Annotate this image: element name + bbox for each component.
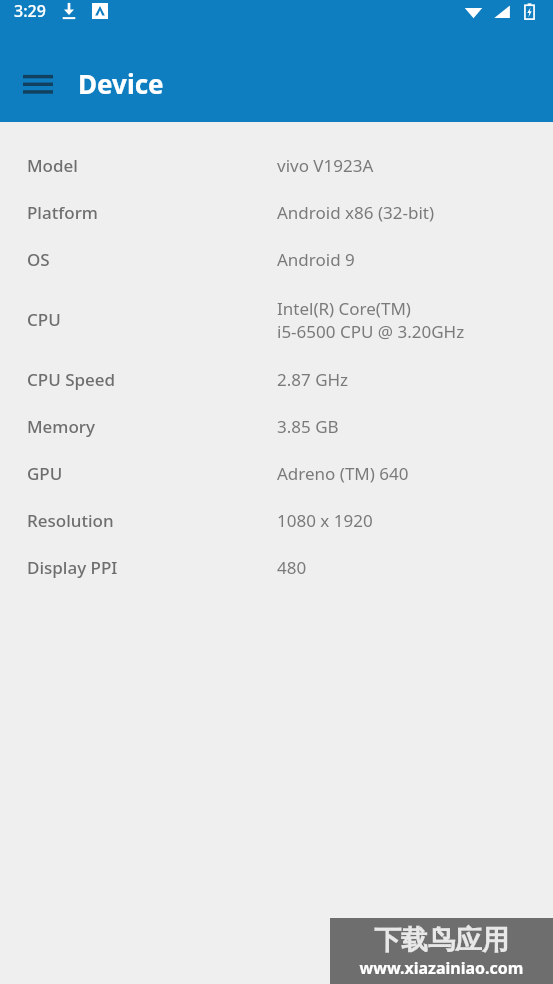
staticText: Display PPI [27,556,118,579]
staticText: 3.85 GB [277,415,339,438]
staticText: Model [27,154,78,177]
staticText: 下载鸟应用 [338,923,545,957]
staticText: Device [78,66,164,101]
staticText: i5-6500 CPU @ 3.20GHz [277,320,465,343]
staticText: 480 [277,556,307,579]
button[interactable]: Model [0,142,553,189]
staticText: GPU [27,462,63,485]
staticText: 1080 x 1920 [277,509,373,532]
staticText: 3:29 [14,0,46,22]
button[interactable]: CPU [0,283,553,356]
staticText: Android 9 [277,248,355,271]
staticText: Platform [27,201,98,224]
staticText: Intel(R) Core(TM) [277,297,411,320]
staticText: OS [27,248,50,271]
staticText: CPU Speed [27,368,116,391]
staticText: Memory [27,415,96,438]
staticText: Adreno (TM) 640 [277,462,409,485]
button[interactable]: Resolution [0,497,553,544]
button[interactable]: Open navigation menu [12,57,64,109]
button[interactable]: OS [0,236,553,283]
staticText: Android x86 (32-bit) [277,201,435,224]
staticText: CPU [27,308,61,331]
staticText: vivo V1923A [277,154,374,177]
button[interactable]: Platform [0,189,553,236]
button[interactable]: Memory [0,403,553,450]
button[interactable]: CPU Speed [0,356,553,403]
staticText: 2.87 GHz [277,368,349,391]
button[interactable]: Display PPI [0,544,553,591]
staticText: www.xiazainiao.com [338,957,545,979]
staticText: Resolution [27,509,114,532]
button[interactable]: GPU [0,450,553,497]
